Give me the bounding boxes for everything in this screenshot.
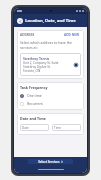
button[interactable]: ADD NEW [63, 33, 81, 37]
staticText: ADD NEW [64, 33, 80, 37]
staticText: Select Services > [38, 160, 63, 164]
staticText: Location, Date, and Time [25, 18, 76, 24]
staticText: Task Frequency [20, 85, 48, 90]
button[interactable]: Select Services > [28, 159, 73, 164]
button[interactable]: Recurrent [20, 101, 81, 106]
staticText: Strathroy Ogilvie St. [23, 65, 51, 69]
button[interactable]: Date [20, 124, 49, 131]
staticText: Time [54, 126, 61, 130]
staticText: One time [27, 93, 42, 98]
staticText: Toronto, ON [23, 69, 41, 73]
staticText: Strathroy Tennis [23, 56, 50, 60]
staticText: Select which address to have the service… [20, 40, 81, 50]
button[interactable]: Back [17, 18, 23, 24]
staticText: Date [22, 126, 29, 130]
button[interactable]: Time [52, 124, 81, 131]
staticText: Recurrent [27, 101, 43, 106]
button[interactable]: Strathroy Tennis [20, 53, 81, 76]
staticText: Unit 2, Company St. Suite [23, 61, 59, 65]
staticText: ADDRESS [20, 33, 35, 37]
button[interactable]: One time [20, 93, 81, 98]
staticText: Date and Time [20, 116, 46, 121]
